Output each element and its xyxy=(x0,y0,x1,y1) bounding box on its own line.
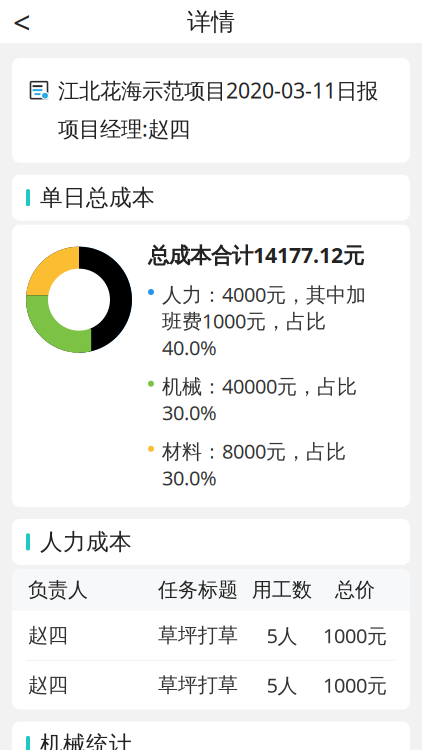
staticText: 1000元 xyxy=(323,622,387,649)
staticText: 任务标题 xyxy=(158,578,238,602)
staticText: 1000元 xyxy=(323,672,387,698)
staticText: 用工数 xyxy=(252,578,312,602)
staticText: 总价 xyxy=(335,578,375,602)
staticText: 机械：40000元，占比30.0% xyxy=(162,373,357,426)
staticText: 人力成本 xyxy=(40,528,132,556)
staticText: 赵四 xyxy=(28,673,68,697)
staticText: 材料：8000元，占比30.0% xyxy=(162,438,346,491)
staticText: 项目经理:赵四 xyxy=(58,114,190,143)
staticText: 赵四 xyxy=(28,623,68,648)
staticText: 单日总成本 xyxy=(40,184,155,211)
staticText: 江北花海示范项目2020-03-11日报 xyxy=(58,76,378,104)
staticText: 草坪打草 xyxy=(158,623,238,648)
staticText: 机械统计 xyxy=(40,731,132,750)
staticText: 草坪打草 xyxy=(158,673,238,697)
staticText: 总成本合计14177.12元 xyxy=(148,241,364,269)
staticText: 人力：4000元，其中加班费1000元，占比40.0% xyxy=(162,281,366,361)
staticText: 负责人 xyxy=(28,578,88,602)
staticText: 5人 xyxy=(266,672,297,698)
staticText: 详情 xyxy=(187,7,235,37)
staticText: 5人 xyxy=(266,622,297,649)
button[interactable]: Back xyxy=(0,0,44,44)
staticText: < xyxy=(13,2,31,42)
